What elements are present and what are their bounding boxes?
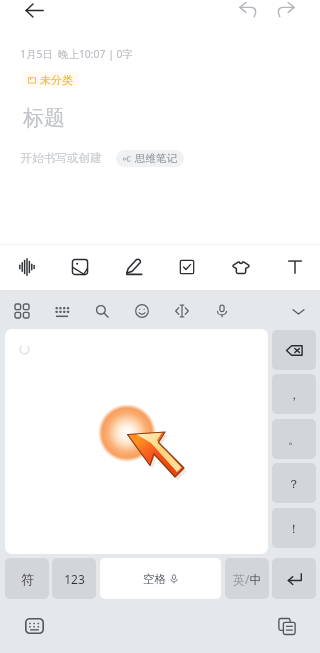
button[interactable]: Apps [6,295,38,327]
button[interactable]: Emoji [126,295,158,327]
button[interactable]: 思维笔记 [116,150,184,167]
staticText: 。 [288,432,300,447]
staticText: 标题 [23,105,65,131]
button[interactable]: Translate [166,295,198,327]
button[interactable]: Voice input [206,295,238,327]
button[interactable]: Collapse keyboard [282,295,314,327]
button[interactable]: Draw [114,247,154,287]
button[interactable]: 英/中 [225,558,269,599]
button[interactable]: Backspace [272,330,316,370]
staticText: ！ [288,521,300,536]
button[interactable]: Clipboard [272,611,302,641]
staticText: 1月5日 晚上10:07 | 0字 [20,47,133,61]
button[interactable]: Undo [232,0,264,25]
button[interactable]: 符 [5,558,49,599]
button[interactable]: 未分类 [23,72,78,88]
button[interactable]: ？ [272,463,316,503]
button[interactable]: 123 [52,558,96,599]
button[interactable]: Switch input method [19,611,49,641]
button[interactable]: Keyboard layout [46,295,78,327]
staticText: 思维笔记 [135,152,177,165]
staticText: 123 [64,571,85,587]
button[interactable]: Back [18,0,50,26]
button[interactable]: Enter [272,558,316,599]
staticText: 空格 [143,572,166,586]
staticText: 开始书写或创建 [20,151,102,166]
button[interactable]: Audio [7,247,47,287]
button[interactable]: ！ [272,508,316,548]
staticText: 英/中 [233,571,262,587]
staticText: ？ [288,476,300,491]
staticText: 未分类 [40,73,73,87]
button[interactable]: 空格 [100,558,221,599]
button[interactable]: Image [60,247,100,287]
staticText: 符 [21,571,34,587]
button[interactable]: Checklist [167,247,207,287]
button[interactable]: 。 [272,419,316,459]
button[interactable]: Redo [270,0,302,25]
button[interactable]: Search [86,295,118,327]
staticText: ， [288,387,300,402]
button[interactable] [5,329,268,554]
button[interactable]: Style [221,247,261,287]
button[interactable]: Text [275,247,315,287]
button[interactable]: ， [272,374,316,414]
